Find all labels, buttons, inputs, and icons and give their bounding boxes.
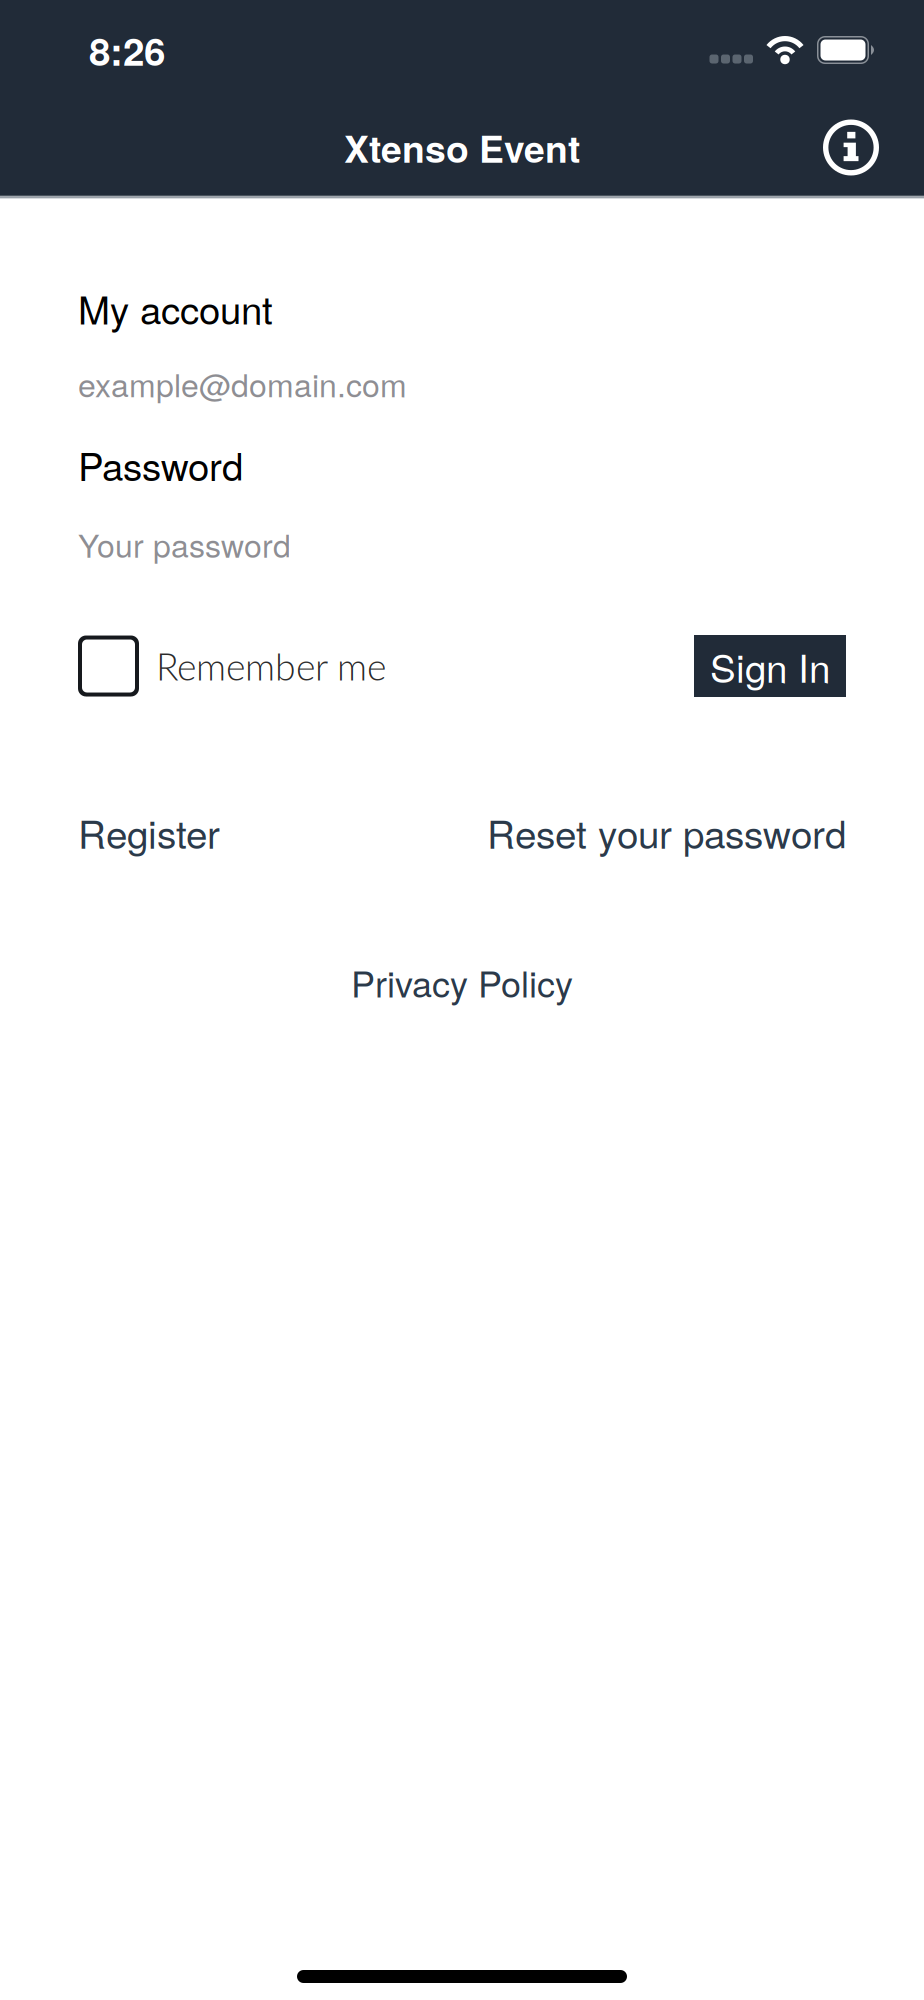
staticText: Xtenso Event	[344, 121, 580, 174]
staticText: Password	[78, 437, 243, 492]
staticText: Remember me	[156, 644, 386, 688]
button[interactable]: Privacy Policy	[351, 956, 573, 1008]
staticText: Your password	[78, 521, 291, 567]
staticText: Reset your password	[487, 804, 846, 860]
staticText: 8:26	[89, 22, 165, 78]
button[interactable]: Your password	[78, 504, 846, 584]
staticText: My account	[78, 280, 273, 335]
staticText: Privacy Policy	[351, 956, 573, 1008]
button[interactable]: Reset your password	[487, 804, 846, 860]
button[interactable]: Info	[823, 119, 879, 175]
button[interactable]: Register	[78, 804, 220, 860]
button[interactable]: example@domain.com	[78, 348, 846, 419]
button[interactable]: Sign In	[694, 635, 846, 697]
button[interactable]: Remember me	[78, 635, 386, 696]
staticText: Register	[78, 804, 220, 860]
staticText: Sign In	[710, 638, 830, 694]
staticText: example@domain.com	[78, 361, 407, 406]
